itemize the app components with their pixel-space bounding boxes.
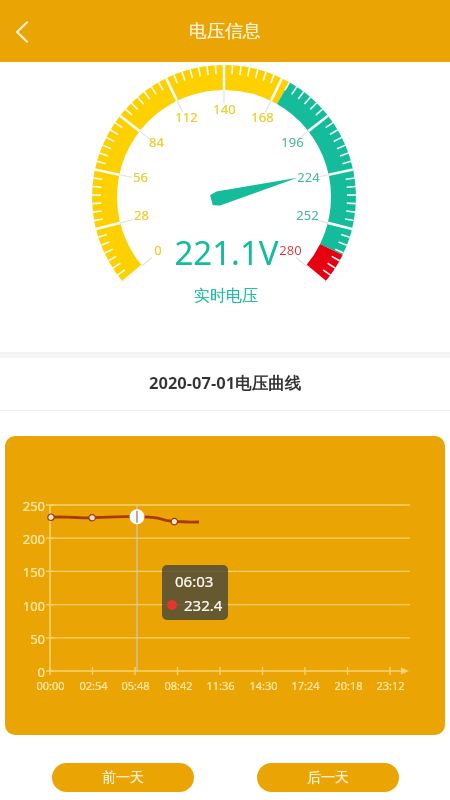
- staticText: 20:18: [334, 678, 363, 693]
- staticText: 84: [149, 133, 164, 151]
- button[interactable]: 前一天: [52, 763, 194, 792]
- staticText: 28: [134, 206, 149, 224]
- staticText: 150: [22, 563, 45, 581]
- staticText: 23:12: [376, 678, 405, 693]
- staticText: 221.1V: [174, 230, 279, 275]
- staticText: 224: [297, 168, 320, 186]
- staticText: 0: [37, 663, 45, 681]
- staticText: 电压信息: [189, 20, 261, 43]
- staticText: 实时电压: [194, 286, 258, 306]
- staticText: 112: [175, 108, 198, 126]
- staticText: 06:03: [175, 571, 214, 591]
- staticText: 232.4: [184, 595, 223, 615]
- staticText: 252: [296, 206, 319, 224]
- staticText: 100: [22, 597, 45, 615]
- staticText: 0: [154, 241, 162, 259]
- staticText: 02:54: [79, 678, 108, 693]
- staticText: 后一天: [307, 769, 349, 787]
- staticText: 11:36: [206, 678, 235, 693]
- staticText: 14:30: [249, 678, 278, 693]
- staticText: 17:24: [291, 678, 320, 693]
- staticText: 00:00: [36, 678, 65, 693]
- staticText: 250: [22, 497, 45, 515]
- staticText: 08:42: [164, 678, 193, 693]
- staticText: 50: [30, 630, 45, 648]
- button[interactable]: Back: [0, 10, 42, 52]
- staticText: 56: [133, 168, 148, 186]
- staticText: 196: [281, 133, 304, 151]
- staticText: 05:48: [121, 678, 150, 693]
- staticText: 168: [251, 108, 274, 126]
- staticText: 前一天: [102, 769, 144, 787]
- staticText: 200: [22, 530, 45, 548]
- staticText: 280: [279, 241, 302, 259]
- button[interactable]: 后一天: [257, 763, 399, 792]
- staticText: 140: [213, 100, 236, 118]
- staticText: 2020-07-01电压曲线: [149, 371, 302, 394]
